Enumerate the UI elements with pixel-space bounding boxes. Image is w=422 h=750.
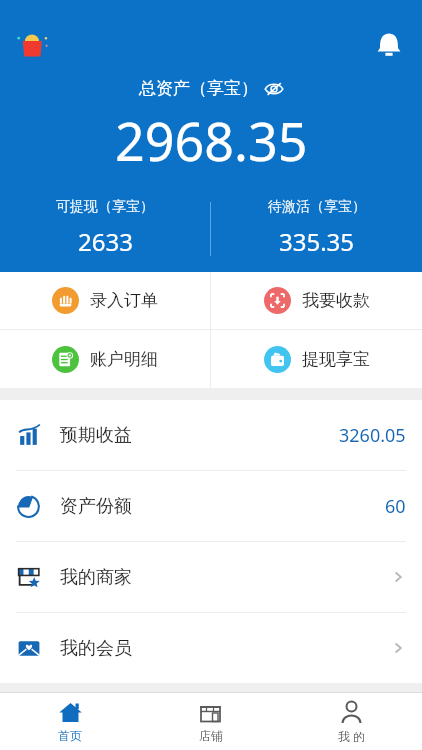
staticText: 总资产（享宝）: [139, 78, 258, 99]
staticText: 店铺: [199, 728, 223, 743]
staticText: 待激活（享宝）: [268, 198, 366, 216]
staticText: 提现享宝: [302, 349, 370, 370]
button[interactable]: 我的会员: [0, 613, 422, 683]
button[interactable]: 可提现（享宝）: [0, 198, 210, 258]
button[interactable]: 录入订单: [0, 272, 210, 329]
button[interactable]: 提现享宝: [211, 330, 422, 388]
staticText: 我要收款: [302, 290, 370, 311]
button[interactable]: 待激活（享宝）: [211, 198, 422, 258]
button[interactable]: 账户明细: [0, 330, 210, 388]
staticText: 账户明细: [90, 349, 158, 370]
staticText: 录入订单: [90, 290, 158, 311]
button[interactable]: 店铺: [140, 693, 281, 750]
staticText: 可提现（享宝）: [56, 198, 154, 216]
staticText: 60: [385, 494, 406, 519]
staticText: 我的会员: [60, 637, 132, 660]
staticText: 资产份额: [60, 495, 132, 518]
button[interactable]: 我要收款: [211, 272, 422, 329]
button[interactable]: 我的商家: [0, 542, 422, 612]
button[interactable]: Notifications: [374, 30, 404, 60]
button[interactable]: 预期收益: [0, 400, 422, 470]
button[interactable]: 首页: [0, 693, 140, 750]
staticText: 我 的: [338, 728, 366, 744]
button[interactable]: 总资产（享宝）: [139, 78, 284, 99]
staticText: 2968.35: [115, 105, 308, 176]
staticText: 3260.05: [339, 423, 406, 448]
staticText: 2633: [78, 225, 133, 258]
staticText: 首页: [58, 728, 82, 743]
staticText: 我的商家: [60, 566, 132, 589]
button[interactable]: 我 的: [281, 693, 422, 750]
staticText: 预期收益: [60, 424, 132, 447]
button[interactable]: 资产份额: [0, 471, 422, 541]
button[interactable]: Red packet rewards: [16, 28, 50, 62]
staticText: 335.35: [279, 225, 355, 258]
